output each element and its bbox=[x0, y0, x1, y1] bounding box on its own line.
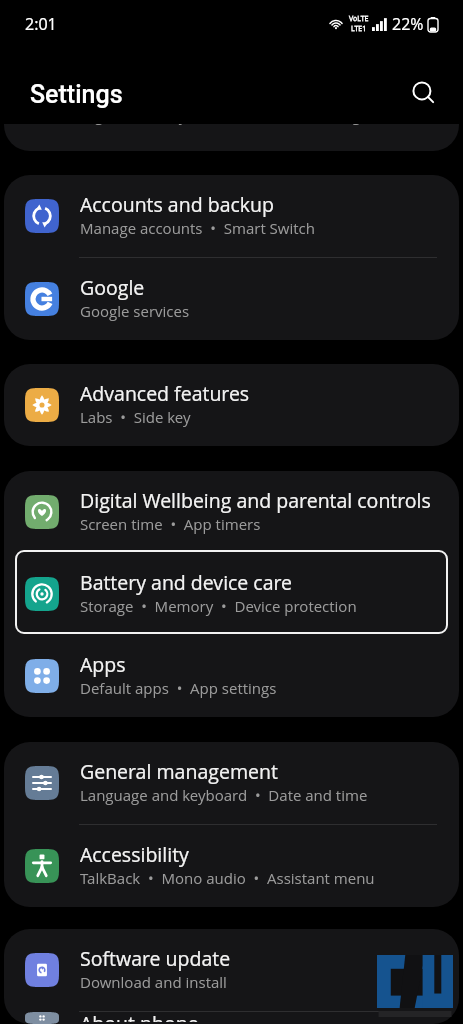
staticText: Software update bbox=[80, 945, 231, 972]
staticText: Google bbox=[80, 274, 145, 301]
staticText: Language and keyboard • Date and time bbox=[80, 785, 368, 805]
staticText: Google services bbox=[80, 301, 190, 321]
staticText: Settings bbox=[30, 80, 123, 109]
staticText: Download and install bbox=[80, 972, 227, 992]
button[interactable]: Battery and device care bbox=[4, 553, 459, 635]
staticText: 22% bbox=[392, 13, 424, 35]
staticText: Advanced features bbox=[80, 380, 250, 407]
staticText: Accessibility bbox=[80, 841, 189, 868]
staticText: Labs • Side key bbox=[80, 407, 191, 427]
staticText: About phone bbox=[80, 1010, 199, 1022]
staticText: Storage • Memory • Device protection bbox=[80, 596, 357, 616]
staticText: Accounts and backup bbox=[80, 191, 274, 218]
staticText: LTE1 bbox=[351, 24, 367, 34]
button[interactable]: Search bbox=[405, 75, 443, 113]
button[interactable]: Software update bbox=[4, 929, 459, 1011]
button[interactable]: About phone bbox=[4, 1012, 459, 1024]
staticText: Default apps • App settings bbox=[80, 678, 277, 698]
button[interactable]: Accounts and backup bbox=[4, 175, 459, 257]
staticText: VoLTE bbox=[349, 14, 369, 24]
staticText: Manage accounts • Smart Switch bbox=[80, 218, 315, 238]
staticText: TalkBack • Mono audio • Assistant menu bbox=[80, 868, 375, 888]
button[interactable]: Accessibility bbox=[4, 825, 459, 907]
button[interactable]: Advanced features bbox=[4, 364, 459, 446]
staticText: Digital Wellbeing and parental controls bbox=[80, 487, 431, 514]
button[interactable]: General management bbox=[4, 742, 459, 824]
button[interactable]: Google bbox=[4, 258, 459, 340]
staticText: Battery and device care bbox=[80, 569, 292, 596]
staticText: Screen time • App timers bbox=[80, 514, 261, 534]
button[interactable]: Apps bbox=[4, 635, 459, 717]
staticText: Brightness • Eye comfort shield • Naviga… bbox=[75, 124, 424, 125]
staticText: 2:01 bbox=[25, 13, 57, 35]
staticText: Apps bbox=[80, 651, 126, 678]
staticText: General management bbox=[80, 758, 278, 785]
button[interactable]: Digital Wellbeing and parental controls bbox=[4, 471, 459, 553]
